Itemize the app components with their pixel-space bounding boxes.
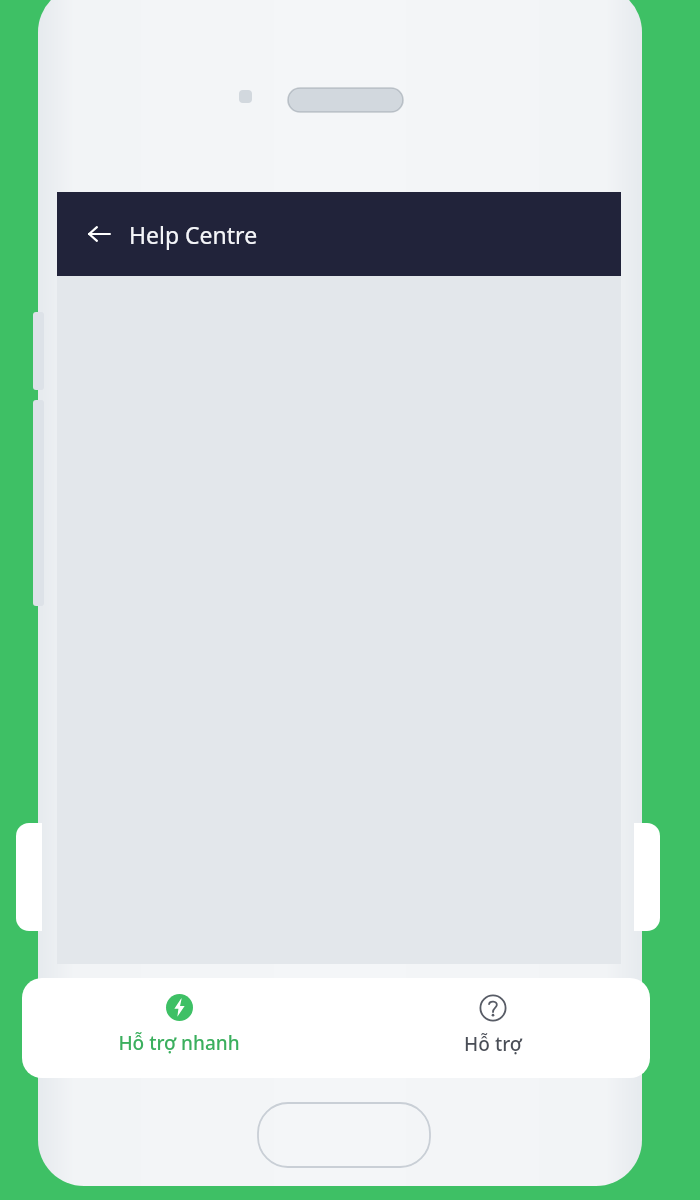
staticText: Help Centre [129,219,258,250]
button[interactable]: Back [75,210,123,258]
staticText: Hỗ trợ [464,1031,522,1057]
button[interactable]: Hỗ trợ nhanh [22,978,336,1078]
button[interactable]: Hỗ trợ [336,978,650,1078]
staticText: Hỗ trợ nhanh [118,1030,240,1056]
